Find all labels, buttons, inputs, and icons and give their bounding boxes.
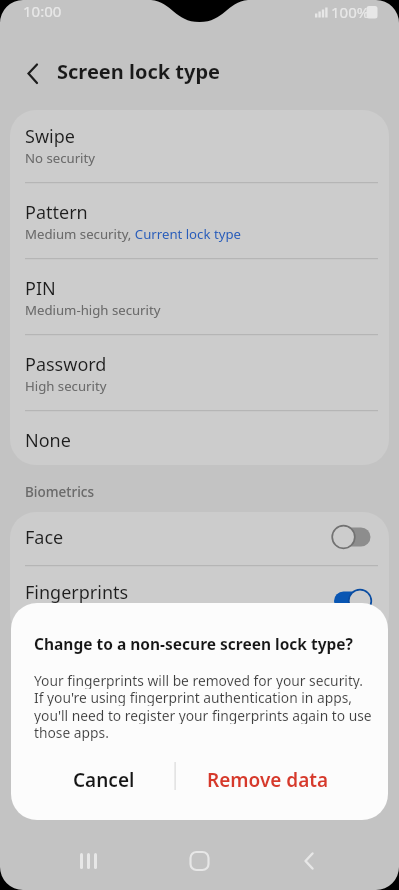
staticText: Change to a non-secure screen lock type? <box>34 633 354 654</box>
staticText: Biometrics <box>25 483 94 501</box>
staticText: Medium security, Current lock type <box>25 225 241 243</box>
staticText: 100% <box>331 2 370 22</box>
button[interactable] <box>332 588 372 614</box>
staticText: Swipe <box>25 124 75 149</box>
button[interactable] <box>10 410 389 465</box>
staticText: Fingerprints <box>25 580 129 605</box>
button[interactable] <box>10 334 389 410</box>
button[interactable] <box>10 565 389 621</box>
staticText: None <box>25 428 71 453</box>
button[interactable] <box>10 182 389 258</box>
button[interactable] <box>10 110 389 182</box>
staticText: Password <box>25 352 107 377</box>
staticText: Your fingerprints will be removed for yo… <box>34 671 364 689</box>
button[interactable]: Cancel <box>39 757 169 803</box>
staticText: those apps. <box>34 723 109 741</box>
staticText: Remove data <box>207 767 329 793</box>
staticText: No security <box>25 149 95 167</box>
staticText: Medium-high security <box>25 301 161 319</box>
staticText: Cancel <box>73 767 135 793</box>
button[interactable] <box>16 58 50 90</box>
staticText: you'll need to register your fingerprint… <box>34 706 372 724</box>
staticText: If you're using fingerprint authenticati… <box>34 688 353 706</box>
staticText: Screen lock type <box>57 58 221 85</box>
staticText: PIN <box>25 276 56 301</box>
button[interactable]: Remove data <box>183 757 353 803</box>
button[interactable] <box>287 843 331 879</box>
staticText: 10:00 <box>23 1 62 21</box>
staticText: High security <box>25 377 107 395</box>
button[interactable] <box>332 524 372 550</box>
button[interactable] <box>68 843 112 879</box>
staticText: Face <box>25 525 64 550</box>
button[interactable] <box>10 258 389 334</box>
button[interactable] <box>178 843 222 879</box>
staticText: Pattern <box>25 200 88 225</box>
button[interactable] <box>10 512 389 565</box>
